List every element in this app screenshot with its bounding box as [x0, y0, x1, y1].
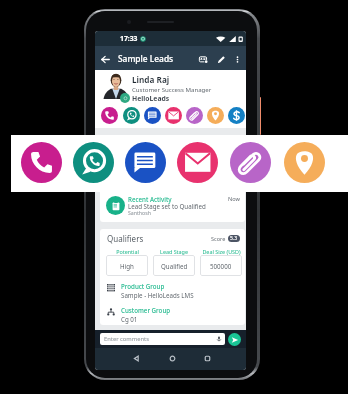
staticText: Lead Stage set to Qualified — [128, 202, 206, 210]
staticText: Sample Leads — [118, 53, 174, 64]
staticText: Customer Group — [121, 306, 171, 314]
staticText: Recent Activity — [128, 195, 172, 203]
button[interactable]: Back — [95, 47, 115, 71]
staticText: Deal Size (USD) — [202, 248, 241, 255]
button[interactable]: Recent Activity — [100, 189, 245, 222]
button[interactable]: More options — [230, 47, 244, 71]
staticText: Now — [228, 195, 240, 203]
staticText: Santhosh — [128, 209, 151, 216]
staticText: 17:33 — [120, 34, 138, 43]
staticText: Potential — [116, 248, 139, 255]
button[interactable]: WhatsApp — [121, 107, 142, 126]
staticText: Cg 01 — [121, 315, 138, 323]
button[interactable]: Recents — [198, 349, 216, 367]
button[interactable]: Location — [284, 142, 325, 183]
button[interactable]: 500000 — [200, 255, 242, 276]
button[interactable]: High — [106, 255, 148, 276]
button[interactable]: Call — [21, 142, 62, 183]
staticText: HelloLeads — [132, 94, 170, 103]
staticText: Sample - HelloLeads LMS — [121, 291, 194, 299]
staticText: Customer Success Manager — [132, 85, 212, 93]
button[interactable]: Email — [163, 107, 184, 126]
button[interactable]: Message — [125, 142, 166, 183]
button[interactable]: Attach — [184, 107, 205, 126]
button[interactable]: Location — [205, 107, 226, 126]
button[interactable]: Enter comments — [100, 333, 225, 345]
button[interactable]: Call — [99, 107, 120, 126]
button[interactable]: Home — [163, 349, 181, 367]
button[interactable]: Send — [228, 333, 241, 346]
button[interactable]: Business card — [194, 47, 212, 71]
staticText: Score — [211, 235, 226, 242]
button[interactable]: Product Group — [107, 282, 245, 299]
button[interactable]: Qualified — [153, 255, 195, 276]
button[interactable]: Attach — [230, 142, 271, 183]
button[interactable]: WhatsApp — [73, 142, 114, 183]
button[interactable]: Edit — [212, 47, 230, 71]
staticText: High — [120, 262, 134, 270]
button[interactable]: Back — [127, 349, 145, 367]
staticText: Qualifiers — [107, 233, 144, 244]
button[interactable]: Deal — [226, 107, 246, 126]
staticText: Linda Raj — [132, 74, 170, 85]
staticText: Lead Stage — [160, 248, 188, 255]
staticText: 5.3 — [230, 235, 238, 242]
staticText: Product Group — [121, 282, 165, 290]
staticText: 500000 — [210, 262, 232, 270]
button[interactable]: Message — [142, 107, 163, 126]
button[interactable]: Email — [177, 142, 218, 183]
staticText: Qualified — [161, 262, 188, 270]
staticText: Enter comments — [104, 335, 149, 343]
button[interactable]: Customer Group — [107, 306, 245, 323]
